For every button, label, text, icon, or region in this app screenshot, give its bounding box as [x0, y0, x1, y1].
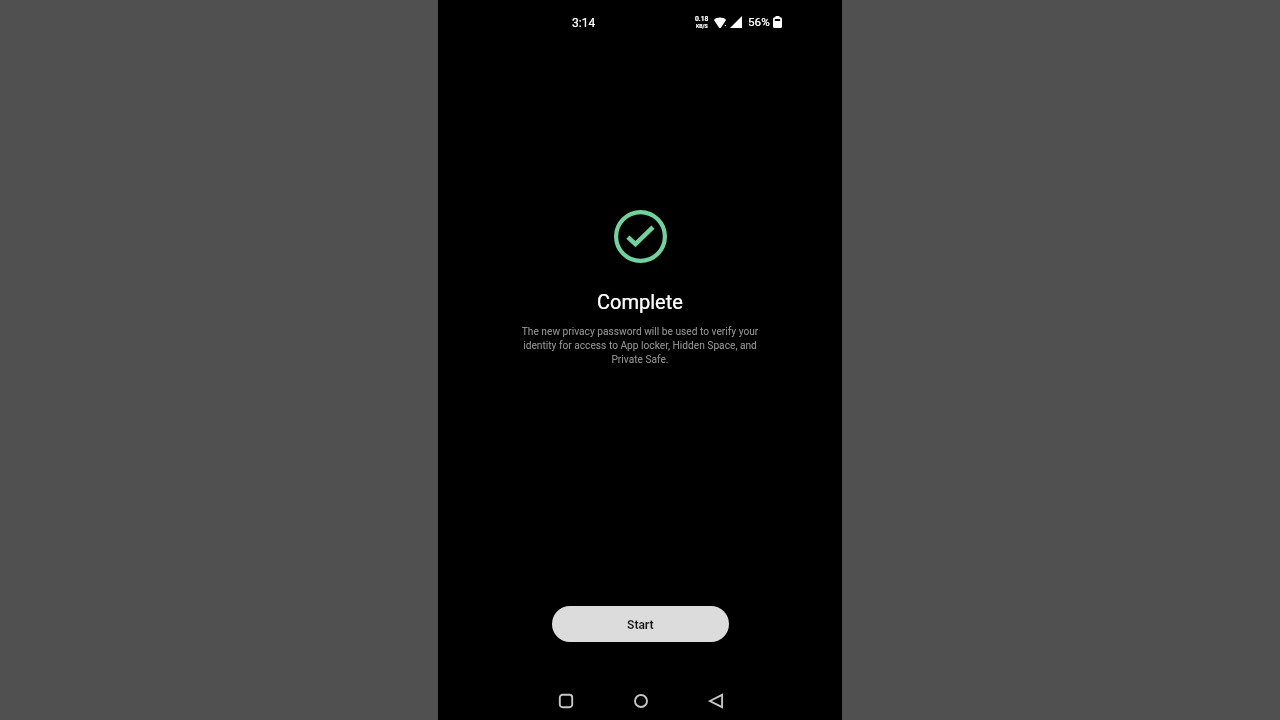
staticText: The new privacy password will be used to… [519, 326, 761, 365]
staticText: 3:14 [572, 16, 596, 30]
staticText: 0.18 [695, 15, 709, 23]
staticText: KB/S [696, 23, 708, 29]
button[interactable]: Home [621, 681, 661, 720]
staticText: Complete [597, 290, 683, 313]
button[interactable]: Back [696, 681, 736, 720]
staticText: 56% [748, 15, 770, 29]
staticText: Start [627, 618, 654, 632]
button[interactable]: Recents [546, 681, 586, 720]
button[interactable]: Start [552, 606, 729, 642]
